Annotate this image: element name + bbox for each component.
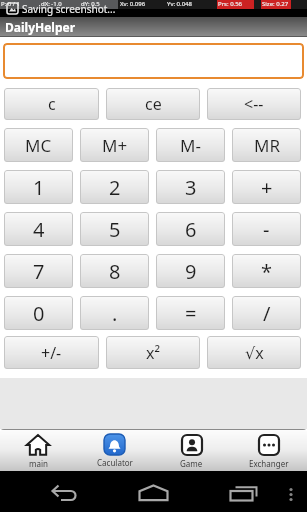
staticText: 2 [109, 174, 121, 201]
staticText: 3 [185, 174, 197, 201]
button[interactable]: M- [156, 128, 225, 162]
staticText: * [261, 258, 273, 285]
staticText: 9 [185, 258, 197, 285]
staticText: 6 [185, 216, 197, 243]
staticText: 4 [33, 216, 45, 243]
button[interactable] [138, 479, 168, 509]
button[interactable]: MC [4, 128, 73, 162]
staticText: / [263, 300, 271, 327]
button[interactable]: Exchanger [230, 430, 307, 471]
button[interactable]: c [4, 88, 99, 120]
staticText: <-- [244, 93, 264, 115]
staticText: M+ [102, 134, 128, 157]
staticText: - [263, 216, 270, 243]
button[interactable]: main [0, 430, 76, 471]
button[interactable]: 6 [156, 212, 225, 246]
staticText: 7 [33, 258, 45, 285]
staticText: = [185, 300, 197, 327]
button[interactable]: Caculator [76, 430, 153, 471]
button[interactable] [48, 479, 78, 509]
button[interactable]: 7 [4, 254, 73, 288]
staticText: main [29, 458, 48, 469]
staticText: M- [180, 134, 201, 157]
button[interactable]: 0 [4, 296, 73, 330]
staticText: MR [254, 134, 280, 157]
staticText: Xv: 0.096 [120, 0, 146, 8]
button[interactable]: <-- [207, 88, 301, 120]
staticText: dX: -1.0 [41, 0, 62, 8]
staticText: + [261, 174, 273, 201]
button[interactable]: x² [106, 336, 200, 369]
button[interactable]: MR [232, 128, 301, 162]
button[interactable]: √x [207, 336, 301, 369]
staticText: ce [145, 93, 162, 115]
staticText: Caculator [97, 457, 133, 468]
staticText: Prs: 0.56 [218, 0, 243, 8]
staticText: √x [245, 342, 264, 364]
button[interactable]: 9 [156, 254, 225, 288]
staticText: 1 [33, 174, 45, 201]
button[interactable]: Game [153, 430, 230, 471]
button[interactable] [3, 43, 304, 79]
button[interactable]: 5 [80, 212, 149, 246]
staticText: Exchanger [249, 458, 289, 469]
button[interactable]: = [156, 296, 225, 330]
staticText: +/- [41, 342, 62, 364]
staticText: MC [25, 134, 52, 157]
staticText: 0 [33, 300, 45, 327]
button[interactable]: M+ [80, 128, 149, 162]
button[interactable]: * [232, 254, 301, 288]
staticText: Game [180, 458, 203, 469]
button[interactable]: 4 [4, 212, 73, 246]
staticText: Yv: 0.048 [167, 0, 192, 8]
button[interactable]: 3 [156, 170, 225, 204]
button[interactable]: + [232, 170, 301, 204]
staticText: x² [146, 342, 161, 364]
button[interactable]: ce [106, 88, 200, 120]
button[interactable] [226, 479, 256, 509]
staticText: Size: 0.27 [262, 0, 289, 8]
staticText: . [112, 300, 118, 327]
staticText: c [48, 93, 56, 115]
staticText: Saving screenshot... [22, 2, 116, 16]
staticText: dY: 0.5 [81, 0, 100, 8]
button[interactable]: 8 [80, 254, 149, 288]
button[interactable]: +/- [4, 336, 99, 369]
staticText: DailyHelper [5, 19, 76, 35]
button[interactable]: / [232, 296, 301, 330]
button[interactable]: 1 [4, 170, 73, 204]
staticText: P: 0 / 1 [1, 0, 21, 8]
button[interactable] [281, 480, 301, 508]
button[interactable]: 2 [80, 170, 149, 204]
staticText: 5 [109, 216, 121, 243]
button[interactable]: - [232, 212, 301, 246]
button[interactable]: . [80, 296, 149, 330]
staticText: 8 [109, 258, 121, 285]
